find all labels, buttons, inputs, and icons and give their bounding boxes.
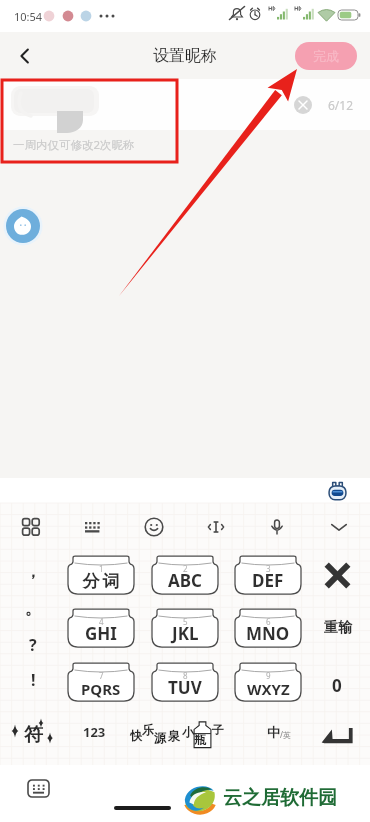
button[interactable]: 快 xyxy=(130,718,242,758)
button[interactable]: 7 xyxy=(68,663,134,701)
staticText: ! xyxy=(31,669,36,691)
button[interactable]: 3 xyxy=(235,556,301,594)
staticText: 快 xyxy=(130,728,142,743)
button[interactable]: Keyboard layout xyxy=(76,510,110,544)
staticText: 一周内仅可修改2次昵称 xyxy=(13,137,135,153)
button[interactable]: Switch keyboard xyxy=(22,772,55,805)
button[interactable]: Clear xyxy=(294,96,312,114)
staticText: PQRS xyxy=(81,679,121,699)
button[interactable]: Delete xyxy=(315,556,359,594)
staticText: 泉 xyxy=(168,728,180,743)
staticText: 。 xyxy=(25,599,41,619)
staticText: 0 xyxy=(332,674,342,697)
button[interactable]: ? xyxy=(9,628,57,662)
button[interactable]: ， xyxy=(9,555,57,589)
staticText: ? xyxy=(29,634,37,656)
staticText: 完成 xyxy=(313,48,339,64)
button[interactable]: 。 xyxy=(9,592,57,626)
staticText: 小 xyxy=(182,724,194,739)
button[interactable]: Enter xyxy=(314,718,362,754)
staticText: 7 xyxy=(99,670,104,681)
button[interactable]: Hide keyboard xyxy=(322,510,356,544)
button[interactable]: 5 xyxy=(152,609,218,647)
staticText: 云之居软件园 xyxy=(223,786,337,810)
staticText: 9 xyxy=(266,670,271,681)
staticText: TUV xyxy=(168,676,202,699)
staticText: 123 xyxy=(83,723,106,741)
button[interactable]: Apps xyxy=(14,510,48,544)
other: Input method xyxy=(327,480,348,501)
staticText: 乐 xyxy=(142,722,154,737)
staticText: ABC xyxy=(168,569,202,592)
button[interactable]: 6 xyxy=(235,609,301,647)
staticText: WXYZ xyxy=(247,679,290,699)
staticText: MNO xyxy=(246,622,290,645)
button[interactable]: 8 xyxy=(152,663,218,701)
button[interactable]: 重输 xyxy=(314,610,362,646)
staticText: 符 xyxy=(24,723,43,747)
staticText: 6/12 xyxy=(328,97,354,113)
staticText: 2 xyxy=(183,563,188,574)
staticText: ， xyxy=(25,562,41,582)
staticText: 分词 xyxy=(81,571,121,592)
staticText: 瓶 xyxy=(194,732,206,747)
staticText: 设置昵称 xyxy=(153,46,217,66)
staticText: GHI xyxy=(85,622,117,645)
button[interactable]: Back xyxy=(8,39,42,73)
staticText: 中 xyxy=(267,724,280,740)
staticText: 子 xyxy=(212,722,224,737)
button[interactable]: 9 xyxy=(235,663,301,701)
button[interactable]: ! xyxy=(9,663,57,697)
button[interactable]: Voice input xyxy=(260,510,294,544)
button[interactable]: Cursor xyxy=(199,510,233,544)
staticText: 8 xyxy=(183,670,188,681)
button[interactable]: Emoji xyxy=(137,510,171,544)
button[interactable]: 2 xyxy=(152,556,218,594)
staticText: 6 xyxy=(266,616,271,627)
button[interactable]: 123 xyxy=(68,716,120,748)
button[interactable]: 4 xyxy=(68,609,134,647)
button[interactable]: 完成 xyxy=(295,42,357,70)
staticText: 5 xyxy=(183,616,188,627)
staticText: JKL xyxy=(172,622,199,645)
button[interactable]: 1 xyxy=(68,556,134,594)
staticText: 4 xyxy=(99,616,104,627)
button[interactable]: 0 xyxy=(315,668,359,702)
staticText: 源 xyxy=(154,730,166,745)
button[interactable]: 符 xyxy=(4,712,64,764)
button[interactable]: 中 xyxy=(256,716,302,748)
staticText: DEF xyxy=(252,569,284,592)
staticText: 重输 xyxy=(324,619,352,637)
staticText: 3 xyxy=(266,563,271,574)
staticText: 1 xyxy=(99,563,104,574)
staticText: /英 xyxy=(280,729,291,740)
staticText: 10:54 xyxy=(14,9,43,24)
